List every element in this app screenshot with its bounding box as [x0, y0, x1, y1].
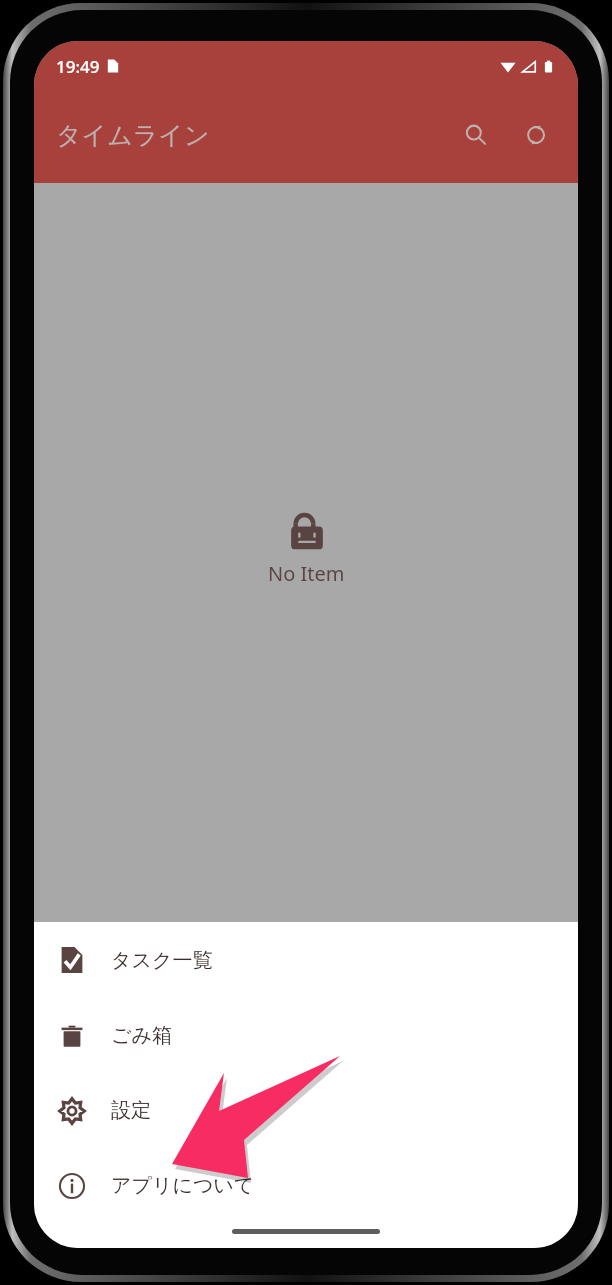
staticText: 19:49	[56, 55, 100, 78]
button[interactable]: タスク一覧	[34, 922, 578, 998]
staticText: No Item	[268, 560, 345, 587]
staticText: タスク一覧	[111, 948, 213, 973]
button[interactable]: 設定	[34, 1073, 578, 1148]
button[interactable]: Search	[452, 111, 500, 159]
staticText: アプリについて	[111, 1173, 255, 1198]
button[interactable]: アプリについて	[34, 1148, 578, 1223]
button[interactable]: ごみ箱	[34, 998, 578, 1073]
staticText: 設定	[111, 1098, 151, 1123]
staticText: タイムライン	[56, 120, 210, 151]
button[interactable]: Refresh	[512, 111, 560, 159]
staticText: ごみ箱	[111, 1023, 172, 1048]
